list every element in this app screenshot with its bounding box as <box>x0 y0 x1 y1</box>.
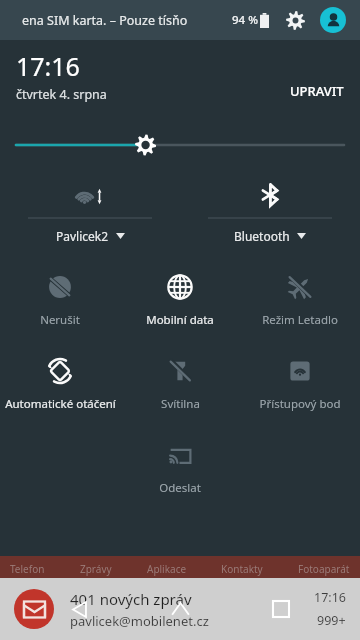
staticText: Fotoaparát <box>298 562 350 576</box>
button[interactable]: Bluetooth <box>180 180 360 244</box>
staticText: ena SIM karta. – Pouze tísňo <box>22 12 188 29</box>
staticText: 17:16 <box>314 589 346 606</box>
button[interactable]: Uživatel <box>320 7 346 33</box>
staticText: 401 nových zpráv <box>70 589 192 609</box>
staticText: 17:16 <box>16 49 80 83</box>
button[interactable]: Odeslat <box>120 440 240 498</box>
staticText: čtvrtek 4. srpna <box>16 86 107 103</box>
staticText: Telefon <box>10 562 45 576</box>
staticText: Bluetooth <box>234 228 290 244</box>
staticText: Odeslat <box>159 480 201 496</box>
button[interactable]: Wi-Fi <box>0 180 180 244</box>
staticText: Svítilna <box>161 396 200 412</box>
staticText: Pavlicek2 <box>56 228 109 244</box>
button[interactable]: Domů <box>158 587 202 631</box>
staticText: Mobilní data <box>146 312 214 328</box>
staticText: 999+ <box>317 612 346 629</box>
button[interactable]: Svítilna <box>120 356 240 414</box>
button[interactable]: Režim Letadlo <box>240 272 360 330</box>
staticText: pavlicek@mobilenet.cz <box>70 612 209 630</box>
button[interactable]: Jas <box>0 130 360 160</box>
button[interactable]: Automatické otáčení <box>0 356 120 414</box>
button[interactable]: 401 nových zpráv <box>0 578 360 640</box>
button[interactable]: Přístupový bod <box>240 356 360 414</box>
button[interactable]: Přehled <box>259 587 303 631</box>
button[interactable]: Nastavení <box>282 7 308 33</box>
staticText: UPRAVIT <box>290 82 344 100</box>
staticText: Aplikace <box>147 562 187 576</box>
button[interactable]: Nerušit <box>0 272 120 330</box>
button[interactable]: Mobilní data <box>120 272 240 330</box>
staticText: Zprávy <box>80 562 112 576</box>
button[interactable]: Zpět <box>57 587 101 631</box>
staticText: Kontakty <box>221 562 263 576</box>
staticText: Nerušit <box>40 312 80 328</box>
staticText: 94 % <box>232 12 258 28</box>
button[interactable]: UPRAVIT <box>282 76 352 106</box>
staticText: Režim Letadlo <box>262 312 338 328</box>
staticText: Automatické otáčení <box>5 396 116 412</box>
staticText: Přístupový bod <box>259 396 341 412</box>
